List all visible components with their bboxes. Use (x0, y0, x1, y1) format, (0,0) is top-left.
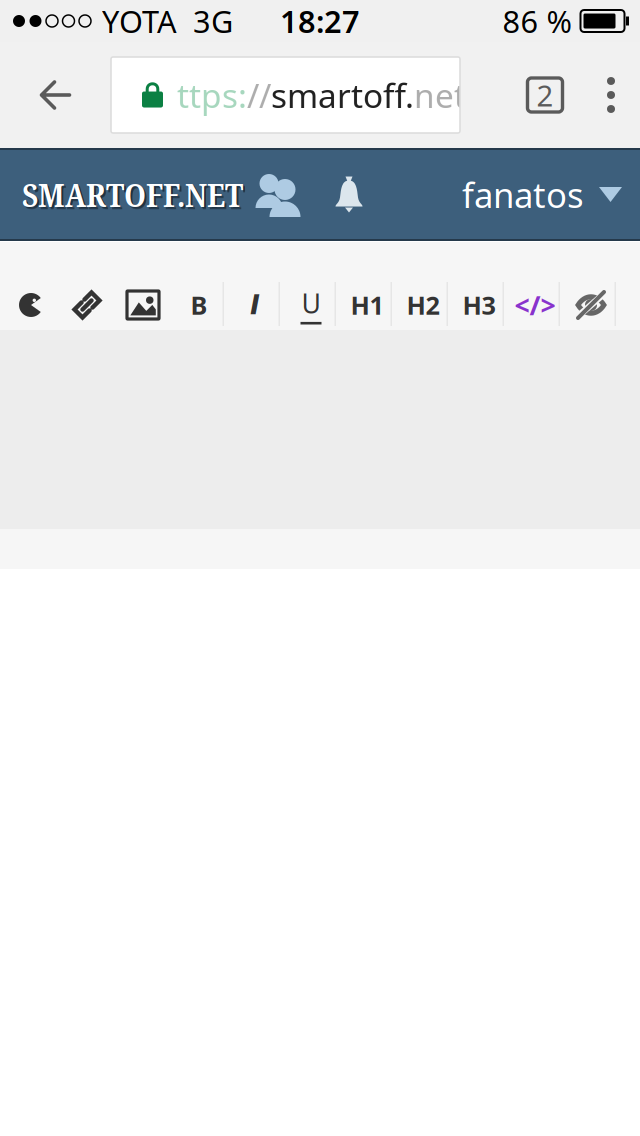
button[interactable]: Menu (582, 42, 640, 148)
button[interactable]: H3 (451, 242, 507, 330)
button[interactable]: H2 (395, 242, 451, 330)
button[interactable]: Insert emoji (3, 242, 59, 330)
button[interactable]: fanatos (462, 150, 640, 239)
staticText: 86 % (502, 1, 571, 41)
staticText: YOTA (102, 1, 177, 41)
staticText: H3 (462, 288, 495, 322)
staticText: H2 (406, 288, 439, 322)
button[interactable]: Insert link (59, 242, 115, 330)
button[interactable]: H1 (339, 242, 395, 330)
staticText: net (414, 73, 466, 117)
button[interactable]: I (227, 242, 283, 330)
button[interactable]: ttps: (111, 57, 460, 133)
staticText: H1 (350, 288, 383, 322)
button[interactable]: U (283, 242, 339, 330)
button[interactable]: Notifications (313, 150, 385, 239)
staticText: smartoff. (271, 73, 414, 117)
button[interactable]: SMARTOFF.NET (0, 150, 243, 239)
staticText: 18:27 (280, 1, 360, 41)
staticText: fanatos (462, 171, 584, 217)
button[interactable]: Tabs (508, 42, 582, 148)
button[interactable]: Insert code (507, 242, 563, 330)
staticText: 2 (536, 75, 553, 114)
staticText: ttps: (177, 73, 247, 117)
staticText: I (250, 289, 260, 320)
staticText: </> (514, 287, 555, 323)
button[interactable]: Toggle preview (563, 242, 619, 330)
staticText: B (190, 288, 207, 322)
staticText: // (247, 73, 271, 117)
button[interactable]: Back (0, 42, 111, 148)
button[interactable]: Insert image (115, 242, 171, 330)
button[interactable]: Users (243, 150, 313, 239)
staticText: U (301, 285, 320, 321)
staticText: SMARTOFF.NET (22, 173, 243, 216)
button[interactable]: B (171, 242, 227, 330)
staticText: 3G (193, 1, 233, 41)
